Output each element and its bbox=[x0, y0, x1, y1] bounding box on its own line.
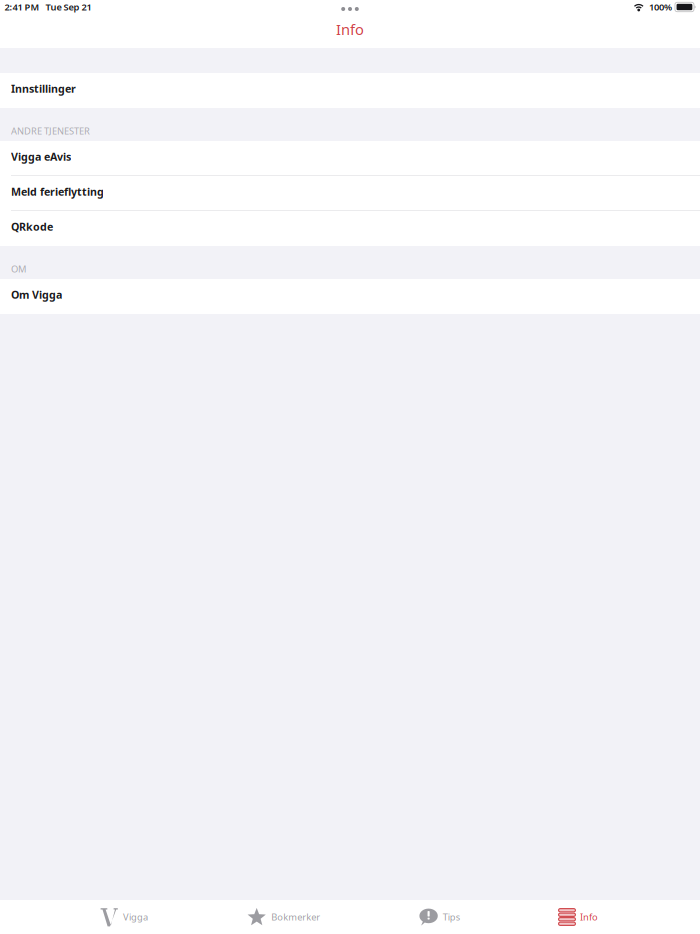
button[interactable]: Bokmerker bbox=[245, 900, 322, 934]
staticText: Meld ferieflytting bbox=[11, 184, 104, 199]
button[interactable]: Om Vigga bbox=[0, 279, 700, 314]
button[interactable]: Vigga bbox=[98, 900, 150, 934]
button[interactable]: Innstillinger bbox=[0, 73, 700, 108]
staticText: Vigga bbox=[123, 911, 148, 923]
staticText: 2:41 PM bbox=[4, 1, 39, 13]
staticText: QRkode bbox=[11, 219, 53, 234]
button[interactable]: Tips bbox=[417, 900, 462, 934]
staticText: OM bbox=[11, 263, 26, 275]
staticText: ANDRE TJENESTER bbox=[11, 125, 90, 137]
staticText: Info bbox=[580, 911, 598, 923]
staticText: Om Vigga bbox=[11, 287, 62, 302]
button[interactable]: Info bbox=[556, 900, 600, 934]
staticText: Tue Sep 21 bbox=[45, 1, 91, 13]
staticText: 100% bbox=[649, 1, 672, 13]
button[interactable]: Vigga eAvis bbox=[0, 141, 700, 176]
staticText: Tips bbox=[443, 911, 460, 923]
staticText: Info bbox=[336, 19, 364, 39]
button[interactable]: QRkode bbox=[0, 211, 700, 246]
button[interactable]: Meld ferieflytting bbox=[0, 176, 700, 211]
staticText: Innstillinger bbox=[11, 81, 76, 96]
staticText: Vigga eAvis bbox=[11, 149, 71, 164]
staticText: Bokmerker bbox=[271, 911, 320, 923]
